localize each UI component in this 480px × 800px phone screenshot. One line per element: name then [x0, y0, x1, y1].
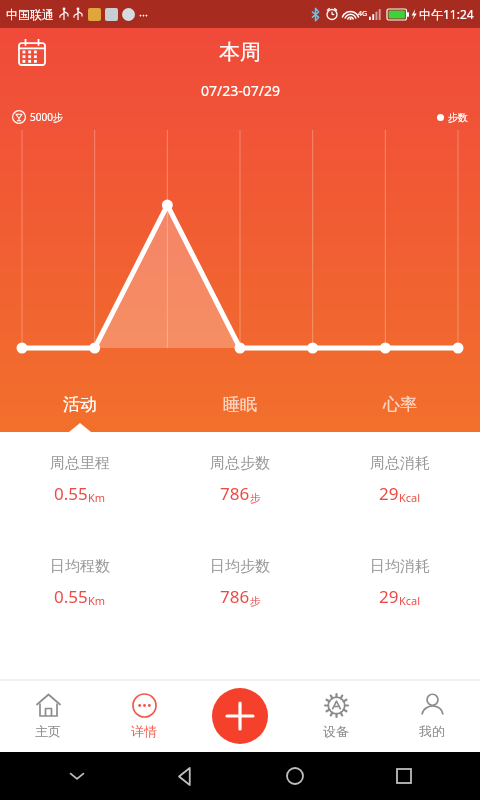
button[interactable]: 周总里程 — [0, 454, 160, 505]
staticText: 活动 — [63, 394, 97, 415]
staticText: 主页 — [35, 723, 61, 739]
button[interactable]: Recents — [396, 768, 412, 784]
staticText: 详情 — [131, 723, 157, 739]
staticText: 786 — [220, 482, 250, 505]
staticText: 4G — [358, 9, 368, 19]
button[interactable]: 日均消耗 — [320, 557, 480, 608]
staticText: 设备 — [323, 723, 349, 739]
staticText: 周总里程 — [50, 454, 110, 473]
staticText: 本周 — [219, 39, 261, 65]
staticText: 日均程数 — [50, 557, 110, 576]
staticText: 我的 — [419, 723, 445, 739]
staticText: 5000步 — [30, 110, 63, 124]
staticText: 日均消耗 — [370, 557, 430, 576]
button[interactable]: Home — [286, 767, 304, 785]
staticText: Km — [88, 593, 106, 608]
button[interactable]: 设备 — [288, 680, 384, 752]
staticText: 786 — [220, 585, 250, 608]
staticText: 周总消耗 — [370, 454, 430, 473]
button[interactable]: 活动 — [0, 388, 160, 432]
button[interactable]: 日均步数 — [160, 557, 320, 608]
staticText: 中国联通 — [6, 7, 54, 22]
button[interactable]: Add — [212, 688, 268, 744]
staticText: 步 — [250, 594, 261, 608]
button[interactable]: 主页 — [0, 680, 96, 752]
staticText: 步数 — [448, 111, 468, 124]
button[interactable]: 详情 — [96, 680, 192, 752]
button[interactable]: 睡眠 — [160, 388, 320, 432]
staticText: 周总步数 — [210, 454, 270, 473]
button[interactable]: 周总步数 — [160, 454, 320, 505]
staticText: 心率 — [383, 394, 417, 415]
staticText: Km — [88, 490, 106, 505]
button[interactable]: 日均程数 — [0, 557, 160, 608]
staticText: 29 — [379, 482, 399, 505]
button[interactable]: Hide — [69, 768, 85, 784]
button[interactable]: 我的 — [384, 680, 480, 752]
staticText: 中午11:24 — [419, 6, 474, 22]
staticText: 日均步数 — [210, 557, 270, 576]
staticText: Kcal — [399, 593, 421, 608]
staticText: 0.55 — [54, 585, 88, 608]
staticText: 07/23-07/29 — [201, 81, 280, 100]
button[interactable]: Calendar — [14, 34, 50, 70]
staticText: 睡眠 — [223, 394, 257, 415]
staticText: 0.55 — [54, 482, 88, 505]
staticText: 步 — [250, 491, 261, 505]
staticText: 29 — [379, 585, 399, 608]
button[interactable]: 周总消耗 — [320, 454, 480, 505]
staticText: ··· — [139, 7, 148, 22]
staticText: Kcal — [399, 490, 421, 505]
button[interactable]: 心率 — [320, 388, 480, 432]
button[interactable]: Back — [177, 768, 194, 785]
